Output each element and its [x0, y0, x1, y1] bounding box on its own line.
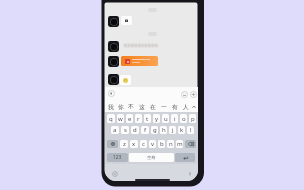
staticText: n	[169, 140, 173, 148]
staticText: j	[172, 126, 174, 134]
button[interactable]: p	[189, 114, 196, 123]
button[interactable]: Contact avatar	[108, 74, 119, 85]
staticText: w	[118, 115, 123, 123]
button[interactable]: k	[178, 126, 185, 134]
button[interactable]: More options	[190, 91, 197, 98]
button[interactable]: 有	[169, 100, 180, 113]
staticText: i	[174, 115, 176, 123]
button[interactable]: Shift	[107, 140, 118, 148]
button[interactable]	[123, 43, 159, 48]
staticText: d	[133, 126, 137, 134]
staticText: q	[109, 115, 113, 123]
button[interactable]	[120, 75, 131, 85]
button[interactable]: c	[140, 140, 147, 148]
button[interactable]: q	[107, 114, 115, 123]
button[interactable]: v	[149, 140, 156, 148]
button[interactable]: n	[167, 140, 174, 148]
staticText: g	[153, 126, 157, 134]
button[interactable]: x	[130, 140, 138, 148]
button[interactable]: f	[141, 126, 149, 134]
button[interactable]: 不	[126, 100, 136, 113]
button[interactable]: y	[153, 114, 160, 123]
staticText: u	[164, 115, 168, 123]
button[interactable]: Emoji	[181, 91, 188, 98]
staticText: a	[113, 126, 117, 134]
button[interactable]: b	[158, 140, 165, 148]
button[interactable]	[121, 16, 132, 25]
button[interactable]: 在	[147, 100, 158, 113]
staticText: y	[155, 115, 159, 123]
staticText: p	[191, 115, 195, 123]
staticText: s	[124, 126, 127, 134]
button[interactable]: m	[176, 140, 183, 148]
button[interactable]: u	[162, 114, 169, 123]
button[interactable]	[121, 56, 158, 66]
button[interactable]: w	[117, 114, 124, 123]
button[interactable]: Enter	[175, 153, 195, 162]
button[interactable]: Expand candidates	[191, 100, 197, 113]
button[interactable]: Microphone	[187, 171, 193, 177]
staticText: b	[160, 140, 164, 148]
button[interactable]: Contact avatar	[108, 16, 119, 27]
staticText: 这	[139, 103, 145, 110]
staticText: v	[151, 140, 155, 148]
staticText: m	[177, 140, 183, 148]
staticText: z	[123, 140, 126, 148]
button[interactable]: 一	[158, 100, 169, 113]
staticText: c	[142, 140, 145, 148]
staticText: 有	[172, 103, 178, 110]
button[interactable]: 我	[106, 100, 116, 113]
button[interactable]: Backspace	[185, 140, 196, 148]
staticText: 一	[161, 103, 167, 110]
staticText: t	[146, 115, 149, 123]
staticText: x	[132, 140, 136, 148]
button[interactable]: Voice input	[108, 90, 115, 97]
button[interactable]: h	[160, 126, 167, 134]
button[interactable]: a	[111, 126, 119, 134]
staticText: e	[128, 115, 132, 123]
button[interactable]: 空格	[129, 153, 174, 162]
staticText: k	[180, 126, 184, 134]
staticText: 你	[118, 103, 124, 110]
button[interactable]: i	[171, 114, 178, 123]
staticText: r	[137, 115, 140, 123]
staticText: 123	[113, 154, 122, 161]
staticText: l	[190, 126, 192, 134]
staticText: 我	[108, 103, 114, 110]
button[interactable]: j	[169, 126, 176, 134]
button[interactable]: o	[180, 114, 187, 123]
button[interactable]: z	[120, 140, 128, 148]
button[interactable]: g	[151, 126, 158, 134]
staticText: 人	[183, 103, 189, 110]
staticText: 空格	[147, 155, 156, 160]
button[interactable]: d	[131, 126, 139, 134]
button[interactable]: r	[135, 114, 142, 123]
button[interactable]: Keyboard settings	[112, 171, 118, 177]
button[interactable]: 123	[107, 153, 128, 162]
staticText: o	[182, 115, 186, 123]
button[interactable]: Contact avatar	[108, 41, 119, 52]
button[interactable]: 人	[180, 100, 191, 113]
button[interactable]: Contact avatar	[108, 56, 119, 67]
button[interactable]: 这	[136, 100, 147, 113]
staticText: 在	[150, 103, 156, 110]
button[interactable]: s	[121, 126, 129, 134]
button[interactable]: l	[187, 126, 194, 134]
staticText: f	[144, 126, 147, 134]
button[interactable]: t	[144, 114, 151, 123]
button[interactable]: e	[126, 114, 133, 123]
staticText: 不	[128, 103, 134, 110]
staticText: h	[162, 126, 166, 134]
button[interactable]: 你	[116, 100, 126, 113]
